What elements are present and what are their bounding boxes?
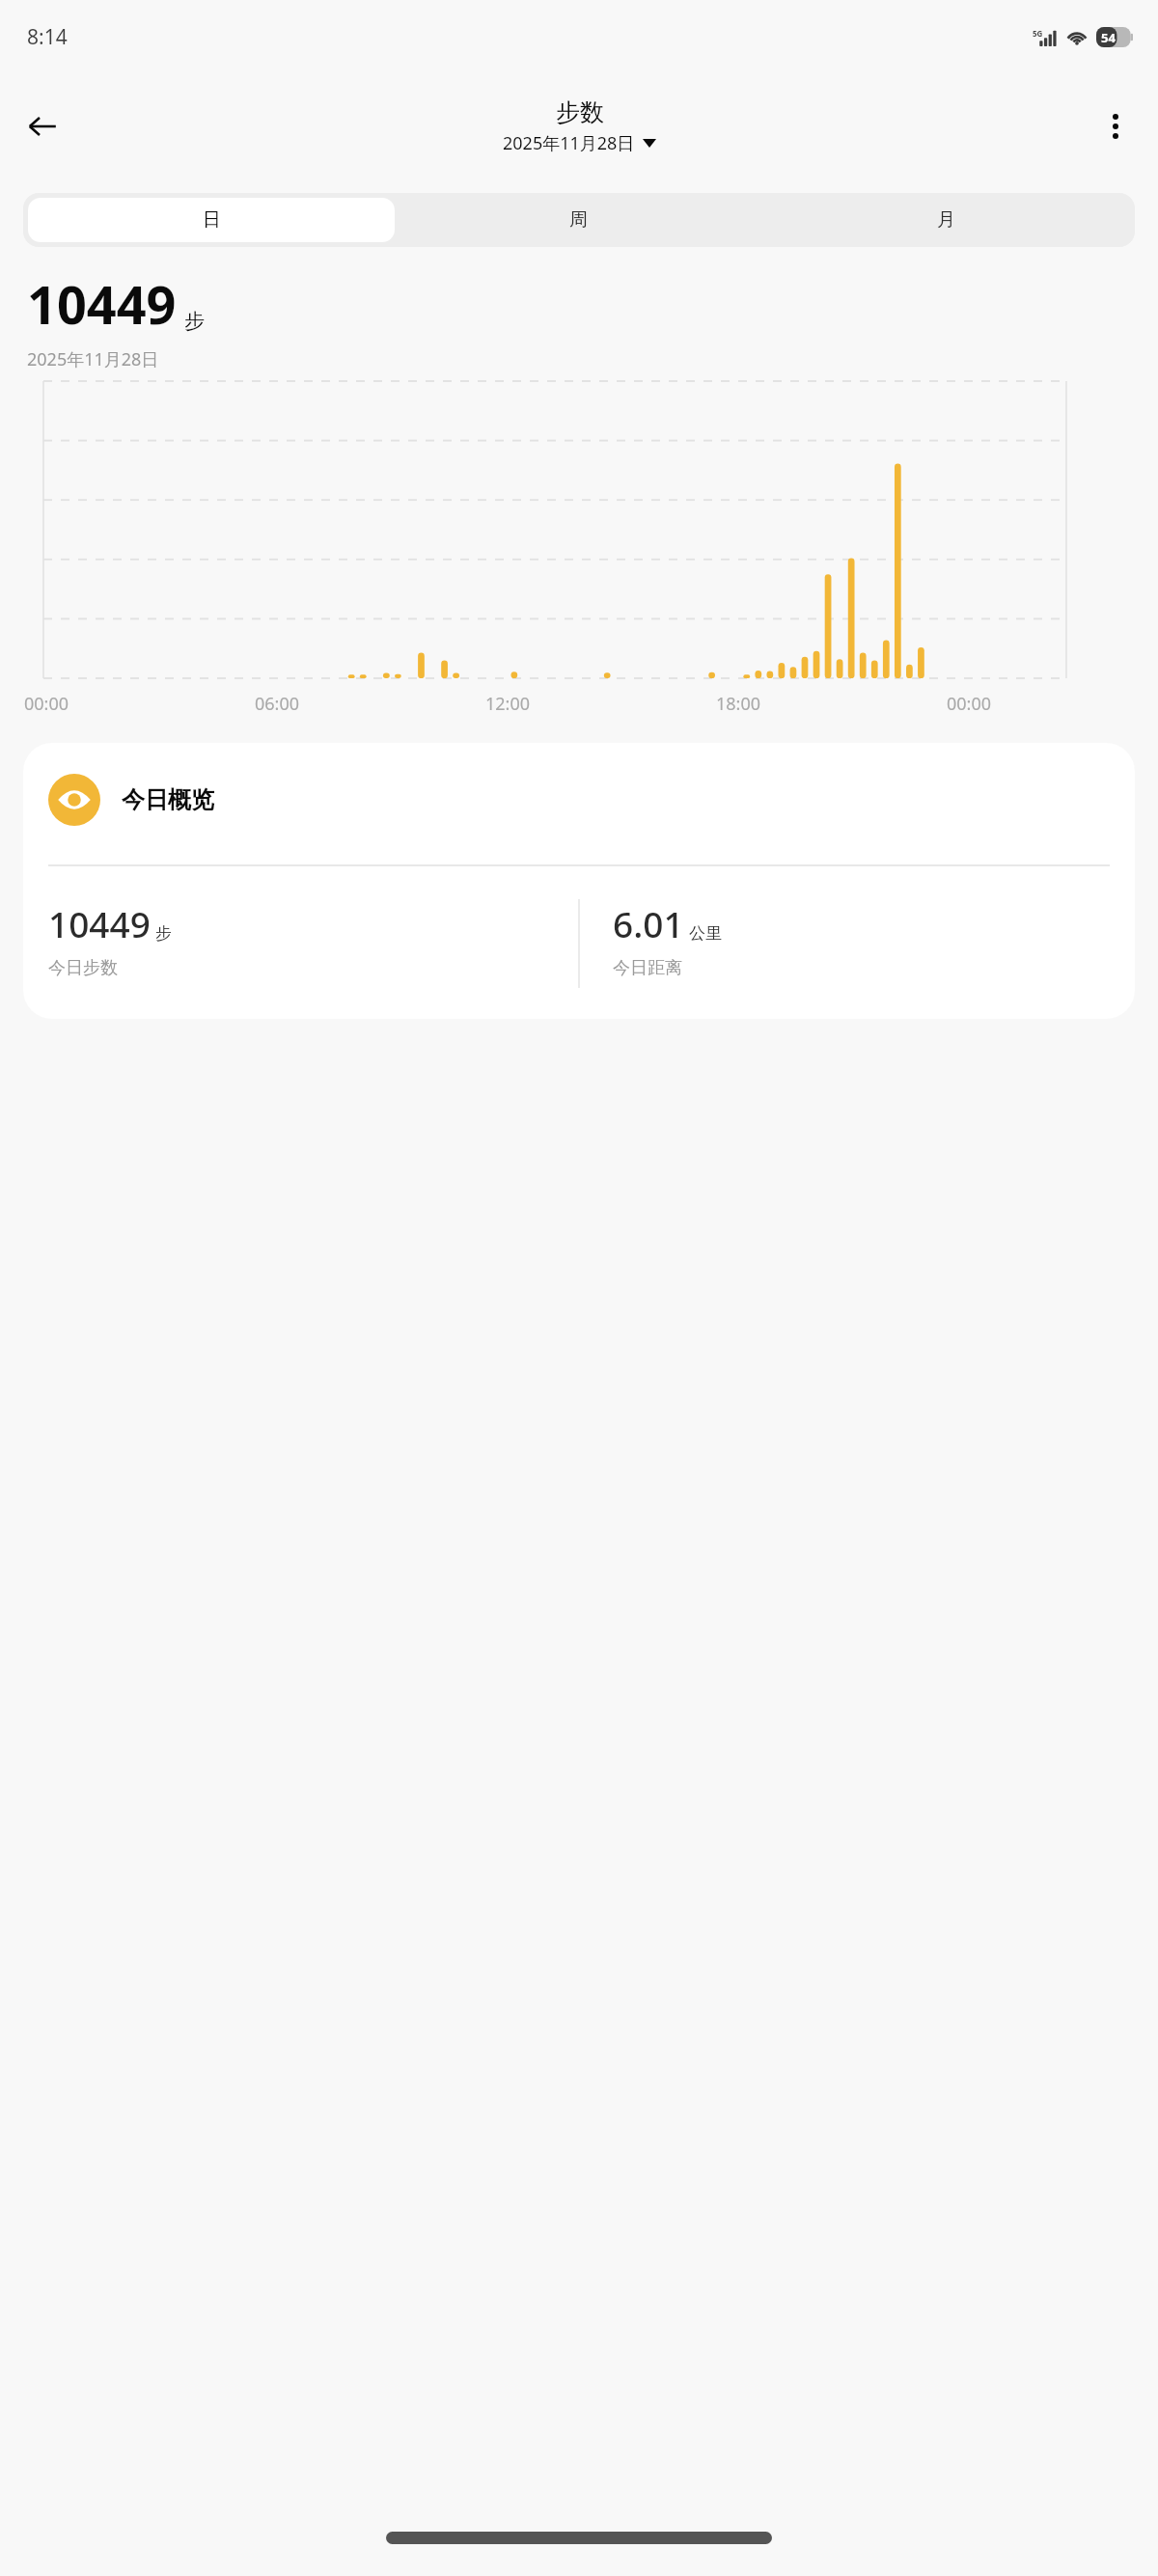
staticText: 10449 [27,268,177,340]
staticText: 2025年11月28日 [503,131,635,155]
staticText: 5G [1033,28,1043,39]
staticText: 月 [937,208,955,232]
staticText: 步 [155,923,172,944]
button[interactable]: Back [15,99,69,153]
button[interactable]: 月 [762,198,1130,242]
staticText: 步数 [556,97,604,127]
staticText: 公里 [689,923,722,944]
button[interactable]: More options [1089,99,1143,153]
staticText: 2025年11月28日 [27,347,159,371]
button[interactable]: 周 [395,198,762,242]
staticText: 日 [203,208,221,232]
staticText: 00:00 [24,692,69,716]
staticText: 12:00 [485,692,531,716]
staticText: 10449 [48,899,151,947]
staticText: 周 [569,208,588,232]
staticText: 06:00 [255,692,300,716]
staticText: 今日距离 [613,957,682,979]
staticText: 步 [184,309,205,334]
staticText: 8:14 [27,23,68,51]
button[interactable]: 2025年11月28日 [503,131,656,155]
button[interactable]: 日 [28,198,395,242]
staticText: 今日步数 [48,957,118,979]
staticText: 54 [1101,29,1116,46]
staticText: 今日概览 [122,785,214,814]
staticText: 18:00 [716,692,761,716]
staticText: 00:00 [947,692,992,716]
button[interactable]: 今日概览 [23,743,1135,1019]
staticText: 6.01 [613,899,684,947]
